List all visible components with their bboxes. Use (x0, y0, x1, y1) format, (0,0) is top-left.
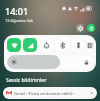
button[interactable]: Auto rotate (87, 38, 93, 52)
button[interactable]: Brightness (7, 55, 93, 69)
staticText: 13 Ağustos Salı (5, 18, 34, 23)
button[interactable]: Gmail • Posta senkronize edildi • Arabel… (3, 87, 97, 99)
button[interactable]: Power menu (87, 24, 95, 32)
button[interactable]: Bluetooth (55, 38, 69, 52)
button[interactable]: Wi-Fi (7, 38, 21, 52)
button[interactable]: Settings (76, 24, 84, 32)
button[interactable]: Do not disturb (39, 38, 53, 52)
button[interactable]: Mobile data (23, 38, 37, 52)
button[interactable]: Flashlight (71, 38, 85, 52)
staticText: Sessiz bildirimler (6, 77, 47, 84)
staticText: Gmail • Posta senkronize edildi • Arabel… (14, 91, 89, 96)
staticText: 14:01 (5, 5, 29, 17)
